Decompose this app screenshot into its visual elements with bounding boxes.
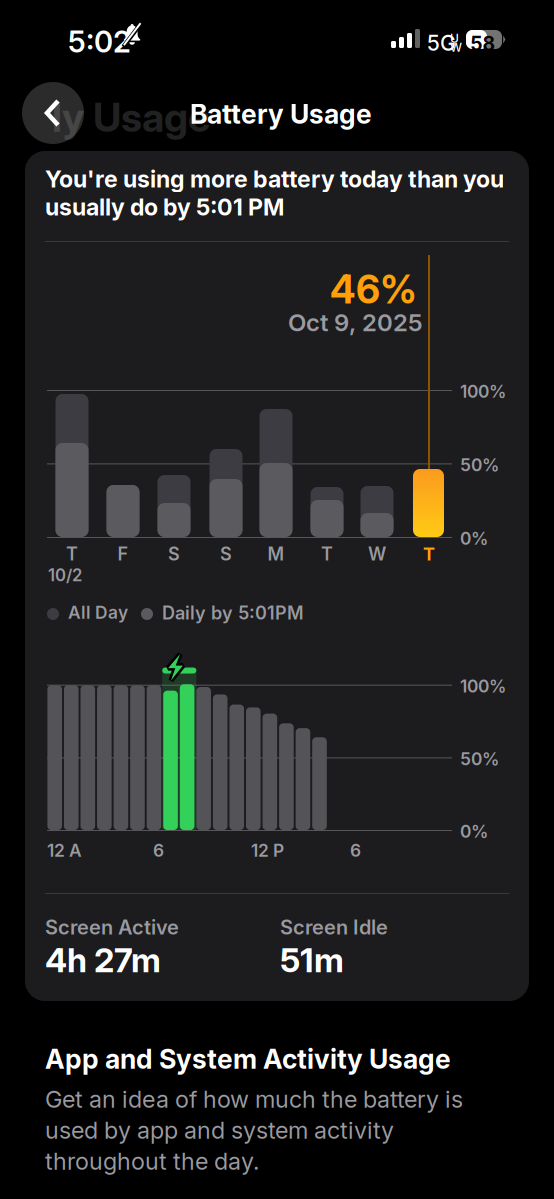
staticText: W [368,543,386,565]
staticText: 12 A [47,840,82,861]
staticText: throughout the day. [45,1147,259,1175]
staticText: 0% [460,821,488,842]
staticText: W [450,40,462,54]
staticText: Battery Usage [190,98,372,130]
staticText: Get an idea of how much the battery is [45,1085,463,1113]
staticText: App and System Activity Usage [45,1043,451,1075]
staticText: S [168,543,180,565]
staticText: Screen Active [45,915,179,939]
staticText: usually do by 5:01 PM [45,193,284,221]
staticText: 50% [460,454,499,475]
staticText: 4h 27m [45,940,161,980]
staticText: 0% [460,528,488,549]
staticText: 5:02 [68,24,131,59]
staticText: 6 [350,840,361,861]
staticText: 12 P [251,840,284,861]
staticText: You're using more battery today than you [45,165,504,193]
staticText: Screen Idle [280,915,388,939]
staticText: M [267,543,284,565]
staticText: 6 [153,840,164,861]
staticText: 50% [460,748,499,769]
staticText: 46% [330,266,417,313]
staticText: 10/2 [48,565,82,585]
staticText: 100% [460,676,506,697]
staticText: F [117,543,128,565]
staticText: S [220,543,232,565]
staticText: U [450,31,459,45]
staticText: 58 [470,32,495,55]
staticText: used by app and system activity [45,1116,394,1144]
staticText: T [66,543,78,565]
staticText: 100% [460,381,506,402]
staticText: Oct 9, 2025 [288,308,423,337]
staticText: T [423,543,435,565]
staticText: ly Usage [52,93,211,141]
staticText: 5G [427,30,456,56]
staticText: 51m [280,940,344,980]
staticText: All Day [68,602,128,623]
staticText: Daily by 5:01PM [162,602,304,624]
staticText: T [321,543,333,565]
button[interactable]: Back [22,82,84,144]
